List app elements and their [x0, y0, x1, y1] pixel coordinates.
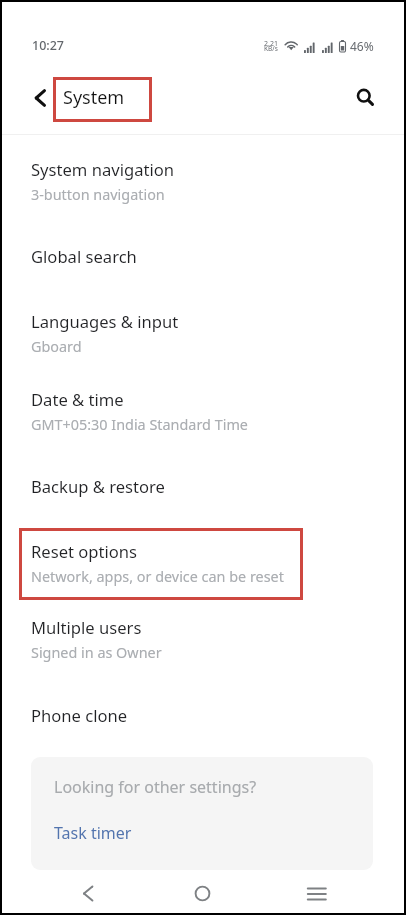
- staticText: GMT+05:30 India Standard Time: [31, 415, 248, 435]
- staticText: Gboard: [31, 337, 82, 357]
- button[interactable]: Global search: [2, 233, 404, 277]
- staticText: KB/s: [264, 44, 278, 53]
- staticText: 3-button navigation: [31, 185, 165, 205]
- staticText: 10:27: [32, 37, 65, 54]
- staticText: Reset options: [31, 540, 138, 563]
- staticText: Date & time: [31, 388, 124, 411]
- button[interactable]: Backup & restore: [2, 463, 404, 507]
- button[interactable]: Home: [188, 878, 220, 910]
- button[interactable]: Back: [26, 86, 50, 110]
- staticText: Languages & input: [31, 310, 179, 333]
- staticText: Backup & restore: [31, 475, 165, 498]
- button[interactable]: System navigation: [2, 146, 404, 216]
- staticText: Looking for other settings?: [54, 776, 257, 798]
- staticText: Multiple users: [31, 616, 142, 639]
- staticText: Phone clone: [31, 704, 128, 727]
- button[interactable]: Phone clone: [2, 692, 404, 736]
- staticText: 46%: [350, 38, 374, 54]
- button[interactable]: Date & time: [2, 376, 404, 446]
- button[interactable]: Search: [351, 83, 377, 109]
- button[interactable]: Multiple users: [2, 604, 404, 674]
- button[interactable]: Languages & input: [2, 298, 404, 368]
- button[interactable]: Back: [74, 878, 106, 910]
- staticText: Global search: [31, 245, 137, 268]
- staticText: System: [63, 85, 125, 110]
- staticText: 2.21: [264, 39, 278, 49]
- button[interactable]: Recent apps: [301, 878, 333, 910]
- button[interactable]: Task timer: [54, 822, 132, 844]
- staticText: System navigation: [31, 158, 175, 181]
- staticText: Signed in as Owner: [31, 643, 162, 663]
- staticText: Network, apps, or device can be reset: [31, 567, 284, 587]
- button[interactable]: Looking for other settings?: [31, 757, 373, 870]
- button[interactable]: Reset options: [2, 528, 404, 598]
